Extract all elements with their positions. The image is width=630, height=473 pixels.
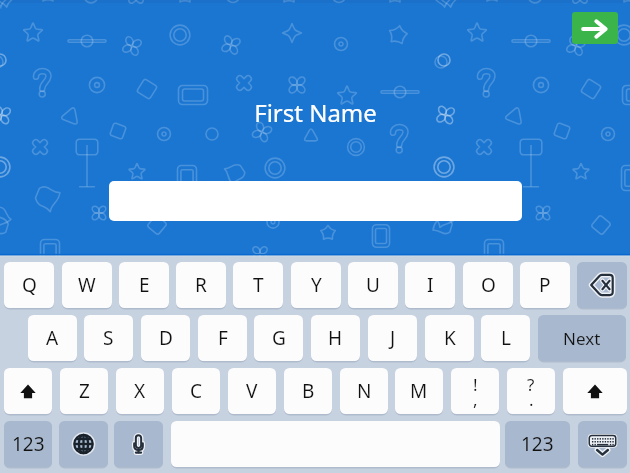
staticText: First Name bbox=[254, 96, 377, 129]
button[interactable]: Change keyboard bbox=[59, 421, 108, 467]
staticText: U bbox=[366, 272, 380, 298]
staticText: K bbox=[444, 325, 456, 351]
staticText: C bbox=[190, 378, 203, 404]
staticText: Q bbox=[22, 272, 37, 298]
staticText: ? bbox=[527, 373, 535, 396]
staticText: Y bbox=[311, 272, 322, 298]
button[interactable]: T bbox=[233, 262, 283, 308]
staticText: V bbox=[246, 378, 258, 404]
staticText: P bbox=[539, 272, 551, 298]
button[interactable]: Q bbox=[4, 262, 54, 308]
staticText: ! bbox=[473, 373, 478, 396]
button[interactable]: Next bbox=[538, 315, 626, 361]
button[interactable]: 123 bbox=[4, 421, 52, 467]
staticText: A bbox=[46, 325, 59, 351]
button[interactable]: Shift bbox=[563, 368, 627, 414]
staticText: N bbox=[357, 378, 372, 404]
staticText: M bbox=[410, 378, 428, 404]
button[interactable]: S bbox=[84, 315, 133, 361]
button[interactable]: W bbox=[62, 262, 112, 308]
button[interactable]: R bbox=[176, 262, 226, 308]
staticText: I bbox=[427, 272, 434, 298]
button[interactable]: ! bbox=[451, 368, 499, 414]
button[interactable]: G bbox=[254, 315, 303, 361]
button[interactable]: Backspace bbox=[577, 262, 627, 308]
staticText: J bbox=[390, 325, 396, 351]
button[interactable]: Continue bbox=[572, 12, 618, 44]
button[interactable]: J bbox=[368, 315, 417, 361]
staticText: R bbox=[195, 272, 207, 298]
staticText: D bbox=[159, 325, 173, 351]
button[interactable]: Shift bbox=[4, 368, 52, 414]
button[interactable]: Hide keyboard bbox=[578, 421, 627, 467]
button[interactable]: N bbox=[340, 368, 388, 414]
staticText: Z bbox=[79, 378, 90, 404]
button[interactable]: I bbox=[405, 262, 455, 308]
button[interactable]: K bbox=[425, 315, 474, 361]
staticText: F bbox=[218, 325, 228, 351]
staticText: W bbox=[78, 272, 96, 298]
button[interactable]: O bbox=[463, 262, 513, 308]
staticText: L bbox=[501, 325, 511, 351]
button[interactable]: 123 bbox=[505, 421, 570, 467]
button[interactable]: ? bbox=[507, 368, 555, 414]
staticText: S bbox=[103, 325, 114, 351]
button[interactable]: P bbox=[520, 262, 570, 308]
button[interactable]: B bbox=[284, 368, 332, 414]
staticText: , bbox=[473, 388, 478, 411]
button[interactable]: V bbox=[228, 368, 276, 414]
button[interactable]: E bbox=[119, 262, 169, 308]
button[interactable]: U bbox=[348, 262, 398, 308]
staticText: O bbox=[481, 272, 496, 298]
staticText: T bbox=[253, 272, 264, 298]
button[interactable]: Z bbox=[60, 368, 108, 414]
button[interactable]: H bbox=[311, 315, 360, 361]
button[interactable]: L bbox=[481, 315, 530, 361]
button[interactable]: C bbox=[172, 368, 220, 414]
button[interactable]: F bbox=[198, 315, 247, 361]
button[interactable]: X bbox=[116, 368, 164, 414]
staticText: Next bbox=[563, 327, 601, 350]
staticText: B bbox=[302, 378, 315, 404]
staticText: 123 bbox=[12, 431, 45, 457]
button[interactable]: First name input bbox=[109, 181, 522, 221]
button[interactable]: A bbox=[28, 315, 77, 361]
staticText: 123 bbox=[521, 431, 554, 457]
staticText: X bbox=[134, 378, 146, 404]
button[interactable]: Y bbox=[291, 262, 341, 308]
button[interactable]: Dictate bbox=[114, 421, 163, 467]
staticText: E bbox=[139, 272, 150, 298]
button[interactable]: M bbox=[395, 368, 443, 414]
button[interactable]: D bbox=[141, 315, 190, 361]
staticText: . bbox=[529, 388, 534, 411]
staticText: G bbox=[272, 325, 286, 351]
staticText: H bbox=[328, 325, 343, 351]
